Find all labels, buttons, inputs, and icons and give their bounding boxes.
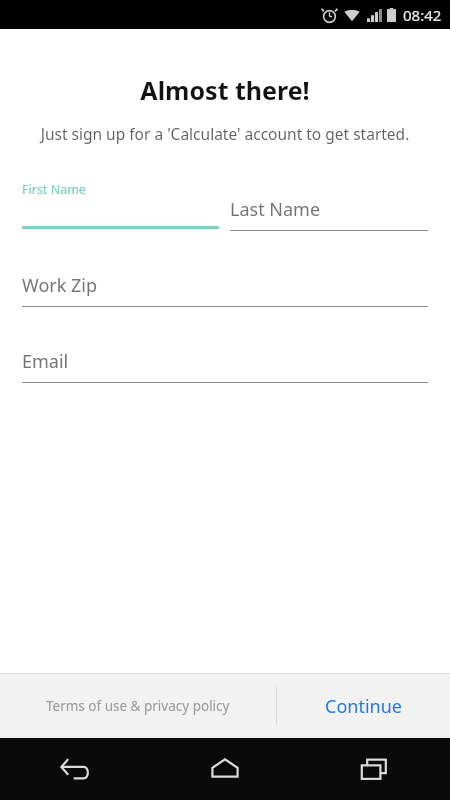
staticText: Almost there!	[0, 73, 450, 107]
staticText: Last Name	[230, 197, 321, 222]
button[interactable]: Continue	[277, 674, 450, 738]
staticText: Email	[22, 349, 69, 374]
button[interactable]: Recent apps	[300, 738, 450, 800]
button[interactable]: Back	[0, 738, 150, 800]
button[interactable]: Last Name	[230, 181, 428, 231]
button[interactable]: Work Zip	[22, 257, 428, 307]
button[interactable]: Home	[150, 738, 300, 800]
staticText: First Name	[22, 181, 86, 198]
staticText: Terms of use & privacy policy	[46, 697, 230, 715]
staticText: Just sign up for a 'Calculate' account t…	[40, 123, 410, 144]
button[interactable]: First Name	[22, 181, 219, 229]
button[interactable]: Email	[22, 333, 428, 383]
staticText: 08:42	[403, 5, 442, 25]
staticText: Continue	[325, 694, 402, 719]
staticText: Work Zip	[22, 273, 98, 298]
button[interactable]: Terms of use & privacy policy	[0, 674, 276, 738]
